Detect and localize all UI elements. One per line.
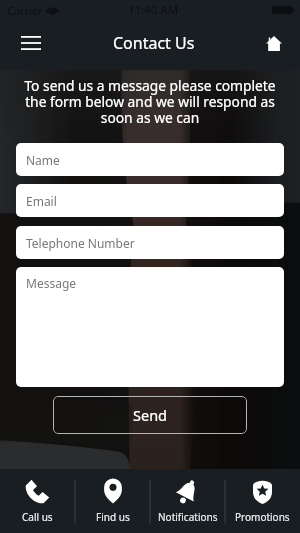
- button[interactable]: Email: [16, 184, 284, 217]
- staticText: Email: [26, 193, 57, 209]
- button[interactable]: Menu: [10, 22, 52, 64]
- button[interactable]: Find us: [75, 478, 150, 524]
- button[interactable]: Promotions: [225, 479, 300, 524]
- staticText: Telephone Number: [26, 235, 135, 251]
- staticText: 11:40 AM: [128, 2, 179, 18]
- staticText: Carrier: [7, 3, 43, 18]
- staticText: Find us: [96, 510, 130, 524]
- staticText: Name: [26, 152, 60, 168]
- staticText: Notifications: [158, 510, 218, 524]
- staticText: Promotions: [235, 510, 290, 524]
- button[interactable]: Call us: [0, 479, 75, 524]
- button[interactable]: Telephone Number: [16, 226, 284, 259]
- staticText: Call us: [22, 510, 53, 524]
- button[interactable]: Send: [53, 396, 247, 434]
- staticText: Message: [26, 275, 77, 291]
- staticText: To send us a message please complete the…: [23, 76, 277, 127]
- staticText: Send: [133, 405, 168, 425]
- button[interactable]: Notifications: [150, 479, 225, 524]
- button[interactable]: Message: [16, 267, 284, 387]
- button[interactable]: Name: [16, 143, 284, 176]
- staticText: Contact Us: [113, 32, 195, 54]
- button[interactable]: Home: [253, 22, 295, 64]
